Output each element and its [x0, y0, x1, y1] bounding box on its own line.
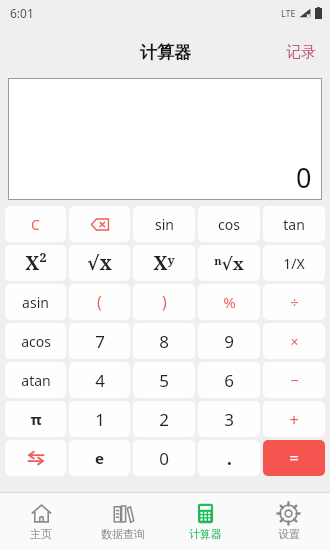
button[interactable]: 8 — [133, 323, 195, 359]
staticText: 3 — [224, 408, 234, 431]
staticText: + — [289, 408, 299, 431]
button[interactable]: Swap — [5, 440, 66, 476]
button[interactable]: 1/X — [263, 245, 325, 281]
staticText: − — [290, 370, 299, 390]
button[interactable]: . — [198, 440, 260, 476]
staticText: ( — [97, 291, 102, 313]
staticText: 数据查询 — [101, 527, 145, 541]
staticText: 9 — [224, 330, 234, 353]
button[interactable]: acos — [5, 323, 66, 359]
button[interactable]: = — [263, 440, 325, 476]
button[interactable]: 4 — [69, 362, 130, 398]
button[interactable]: ÷ — [263, 284, 325, 320]
staticText: 记录 — [286, 43, 316, 62]
staticText: 0 — [159, 447, 169, 470]
staticText: 设置 — [278, 527, 300, 541]
button[interactable]: ( — [69, 284, 130, 320]
button[interactable]: √x — [69, 245, 130, 281]
staticText: 主页 — [30, 527, 52, 541]
button[interactable]: 设置 — [247, 493, 330, 550]
button[interactable]: ) — [133, 284, 195, 320]
button[interactable]: Backspace — [69, 206, 130, 242]
button[interactable]: × — [263, 323, 325, 359]
staticText: 7 — [95, 330, 105, 353]
staticText: 6:01 — [10, 5, 34, 21]
staticText: cos — [218, 215, 240, 234]
staticText: ) — [162, 291, 167, 313]
button[interactable]: − — [263, 362, 325, 398]
button[interactable]: + — [263, 401, 325, 437]
staticText: = — [289, 447, 299, 469]
button[interactable]: e — [69, 440, 130, 476]
staticText: C — [31, 215, 40, 234]
staticText: 计算器 — [189, 527, 222, 541]
staticText: Xʸ — [153, 250, 175, 276]
staticText: 6 — [224, 369, 234, 392]
staticText: ⁿ√x — [214, 252, 244, 275]
staticText: ÷ — [290, 292, 299, 312]
button[interactable]: 3 — [198, 401, 260, 437]
button[interactable]: 7 — [69, 323, 130, 359]
button[interactable]: 1 — [69, 401, 130, 437]
staticText: . — [227, 447, 232, 470]
staticText: % — [223, 292, 236, 312]
button[interactable]: 9 — [198, 323, 260, 359]
staticText: 2 — [159, 408, 169, 431]
staticText: asin — [22, 293, 49, 312]
button[interactable]: 0 — [133, 440, 195, 476]
button[interactable]: 记录 — [272, 35, 330, 70]
button[interactable]: X² — [5, 245, 66, 281]
button[interactable]: 主页 — [0, 493, 82, 550]
button[interactable]: 计算器 — [164, 493, 247, 550]
staticText: LTE — [281, 7, 296, 19]
button[interactable]: π — [5, 401, 66, 437]
staticText: π — [30, 409, 42, 429]
button[interactable]: tan — [263, 206, 325, 242]
button[interactable]: ⁿ√x — [198, 245, 260, 281]
staticText: 8 — [159, 330, 169, 353]
button[interactable]: % — [198, 284, 260, 320]
button[interactable]: asin — [5, 284, 66, 320]
button[interactable]: C — [5, 206, 66, 242]
staticText: 计算器 — [140, 42, 191, 63]
staticText: √x — [87, 250, 112, 276]
staticText: 1 — [95, 408, 105, 431]
button[interactable]: 5 — [133, 362, 195, 398]
staticText: atan — [21, 371, 51, 390]
button[interactable]: sin — [133, 206, 195, 242]
button[interactable]: Xʸ — [133, 245, 195, 281]
button[interactable]: 6 — [198, 362, 260, 398]
staticText: acos — [21, 332, 51, 351]
staticText: 5 — [159, 369, 169, 392]
staticText: 1/X — [283, 254, 305, 273]
staticText: × — [290, 332, 299, 351]
staticText: X² — [25, 250, 47, 276]
staticText: sin — [155, 215, 174, 234]
button[interactable]: atan — [5, 362, 66, 398]
staticText: 0 — [296, 159, 312, 196]
staticText: 4 — [95, 369, 105, 392]
button[interactable]: cos — [198, 206, 260, 242]
staticText: tan — [283, 215, 305, 234]
button[interactable]: 数据查询 — [82, 493, 164, 550]
staticText: e — [95, 448, 104, 468]
button[interactable]: 2 — [133, 401, 195, 437]
